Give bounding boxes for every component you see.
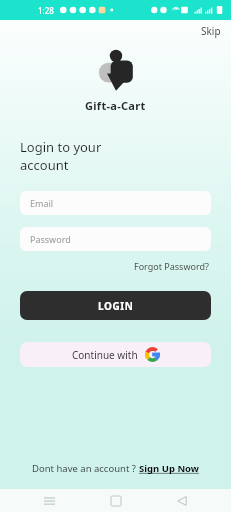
staticText: account: [20, 156, 69, 174]
staticText: Password: [30, 233, 71, 245]
button[interactable]: Dont have an account ?: [0, 458, 231, 479]
staticText: Dont have an account ?: [32, 462, 139, 475]
staticText: Sign Up Now: [139, 462, 199, 475]
button[interactable]: Continue with: [20, 342, 211, 367]
button[interactable]: Recent apps: [32, 489, 66, 512]
staticText: LOGIN: [98, 299, 134, 313]
staticText: Forgot Password?: [134, 260, 209, 272]
button[interactable]: LOGIN: [20, 291, 211, 320]
staticText: Email: [30, 197, 54, 209]
button[interactable]: Back: [165, 489, 199, 512]
staticText: 1:28: [38, 5, 54, 16]
staticText: Continue with: [72, 348, 138, 362]
button[interactable]: Forgot Password?: [132, 258, 211, 274]
button[interactable]: Home: [99, 489, 133, 512]
button[interactable]: Password: [20, 227, 211, 251]
button[interactable]: Skip: [191, 21, 231, 41]
staticText: Login to your: [20, 138, 102, 156]
staticText: Skip: [201, 24, 221, 38]
button[interactable]: Email: [20, 191, 211, 215]
staticText: Gift-a-Cart: [85, 98, 146, 113]
